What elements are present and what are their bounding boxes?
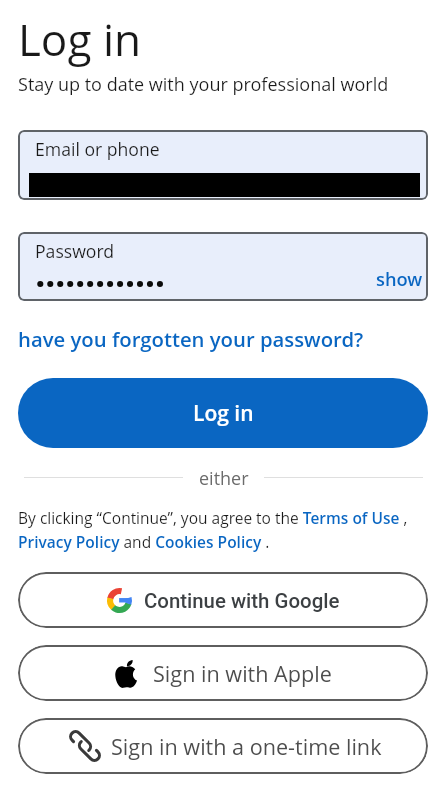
button[interactable]: One-time link <box>18 718 428 774</box>
button[interactable]: Password <box>18 232 428 301</box>
staticText: Continue with Google <box>144 589 340 613</box>
button[interactable]: Log in <box>18 378 428 448</box>
staticText: Log in <box>193 399 254 428</box>
staticText: Password <box>35 239 115 263</box>
button[interactable]: show <box>358 262 423 294</box>
staticText: By clicking “Continue”, you agree to the… <box>18 507 428 553</box>
button[interactable]: Google <box>18 572 428 628</box>
other: Google <box>107 588 132 613</box>
staticText: Sign in with Apple <box>153 659 332 688</box>
staticText: either <box>199 466 249 488</box>
staticText: Stay up to date with your professional w… <box>18 72 389 97</box>
button[interactable]: Email or phone <box>18 130 428 200</box>
staticText: Email or phone <box>35 137 160 161</box>
button[interactable]: Apple <box>18 645 428 701</box>
other: Apple <box>115 660 137 688</box>
staticText: show <box>376 266 423 291</box>
staticText: Sign in with a one-time link <box>111 732 382 761</box>
button[interactable]: have you forgotten your password? <box>18 325 364 353</box>
other: One-time link <box>65 726 105 766</box>
staticText: Log in <box>18 9 142 69</box>
